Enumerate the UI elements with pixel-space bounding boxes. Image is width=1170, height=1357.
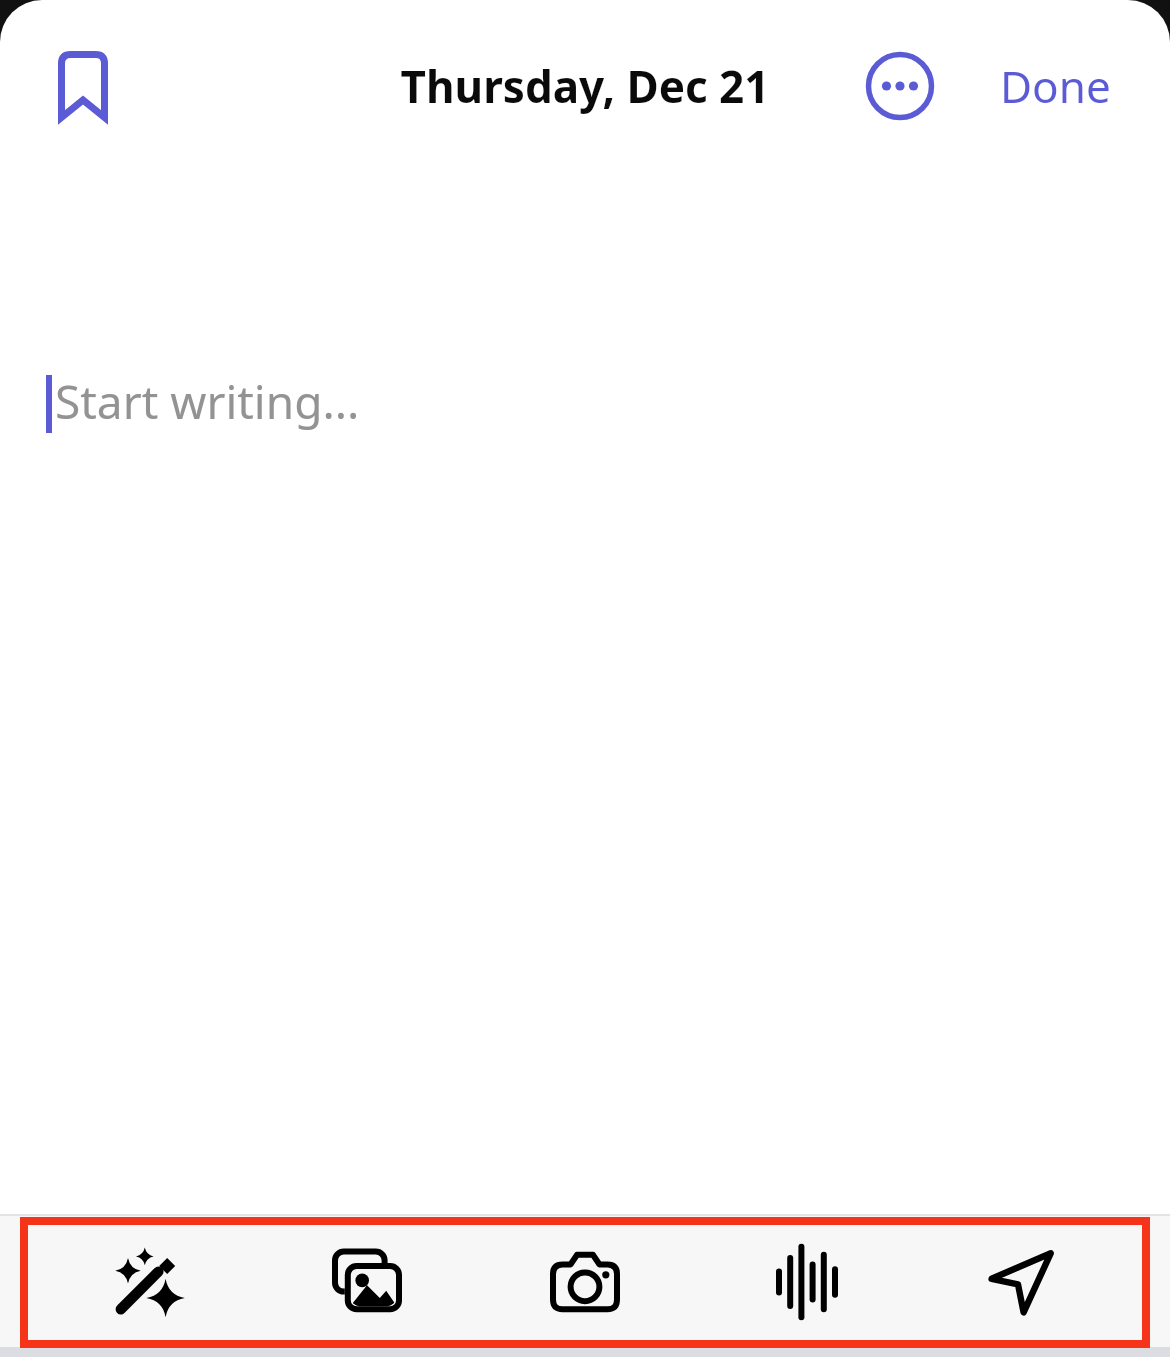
- button[interactable]: Start writing...: [0, 170, 1170, 1210]
- button[interactable]: Audio recording: [733, 1216, 873, 1347]
- staticText: Start writing...: [55, 370, 360, 433]
- staticText: Thursday, Dec 21: [0, 56, 1170, 116]
- button[interactable]: More options: [852, 38, 948, 134]
- button[interactable]: Photo library: [297, 1216, 437, 1347]
- staticText: Done: [1000, 56, 1111, 116]
- button[interactable]: Camera: [515, 1216, 655, 1347]
- button[interactable]: Bookmark: [40, 38, 126, 134]
- button[interactable]: Send: [952, 1216, 1092, 1347]
- button[interactable]: Magic edit: [78, 1216, 218, 1347]
- button[interactable]: Done: [980, 40, 1131, 132]
